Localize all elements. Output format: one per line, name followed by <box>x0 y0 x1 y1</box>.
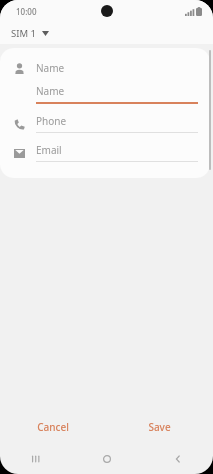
button[interactable]: Phone <box>0 114 210 133</box>
staticText: SIM 1 <box>11 27 36 40</box>
button[interactable]: Back <box>142 444 213 474</box>
button[interactable]: SIM 1 <box>0 22 213 44</box>
staticText: Cancel <box>37 420 69 434</box>
button[interactable]: Recents <box>0 444 71 474</box>
staticText: Name <box>36 84 65 98</box>
button[interactable]: Save <box>106 410 213 444</box>
staticText: Name <box>36 61 65 75</box>
other: Phone <box>10 115 28 133</box>
staticText: Email <box>36 143 62 157</box>
staticText: 10:00 <box>16 6 37 17</box>
staticText: Save <box>148 420 171 434</box>
button[interactable]: Home <box>71 444 142 474</box>
button[interactable]: Name <box>0 58 210 78</box>
other: Email <box>10 144 28 162</box>
button[interactable]: Name <box>0 84 210 104</box>
button[interactable]: Email <box>0 143 210 162</box>
staticText: Phone <box>36 114 67 128</box>
button[interactable]: Cancel <box>0 410 106 444</box>
